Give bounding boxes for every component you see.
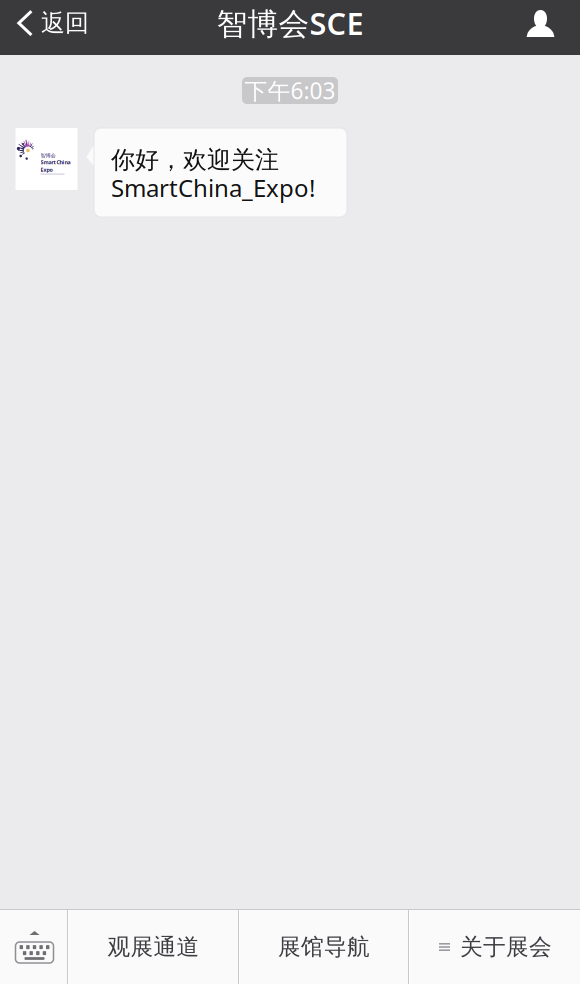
staticText: 你好，欢迎关注 (111, 145, 279, 175)
staticText: Smart China (40, 159, 70, 166)
button[interactable]: 观展通道 (69, 910, 238, 984)
staticText: 智博会SCE (216, 3, 363, 43)
button[interactable]: 个人资料 (506, 0, 580, 46)
button[interactable]: 返回 (0, 0, 103, 46)
staticText: 返回 (41, 8, 89, 38)
button[interactable]: 关于展会 (410, 910, 580, 984)
staticText: 智博会 (40, 152, 55, 159)
staticText: 关于展会 (460, 933, 552, 961)
button[interactable]: 键盘 (0, 910, 67, 984)
staticText: Expo (40, 166, 52, 173)
staticText: 下午6:03 (244, 75, 335, 105)
staticText: 展馆导航 (278, 933, 370, 961)
staticText: SmartChina_Expo! (111, 172, 315, 204)
staticText: 观展通道 (107, 933, 199, 961)
button[interactable]: 展馆导航 (240, 910, 408, 984)
